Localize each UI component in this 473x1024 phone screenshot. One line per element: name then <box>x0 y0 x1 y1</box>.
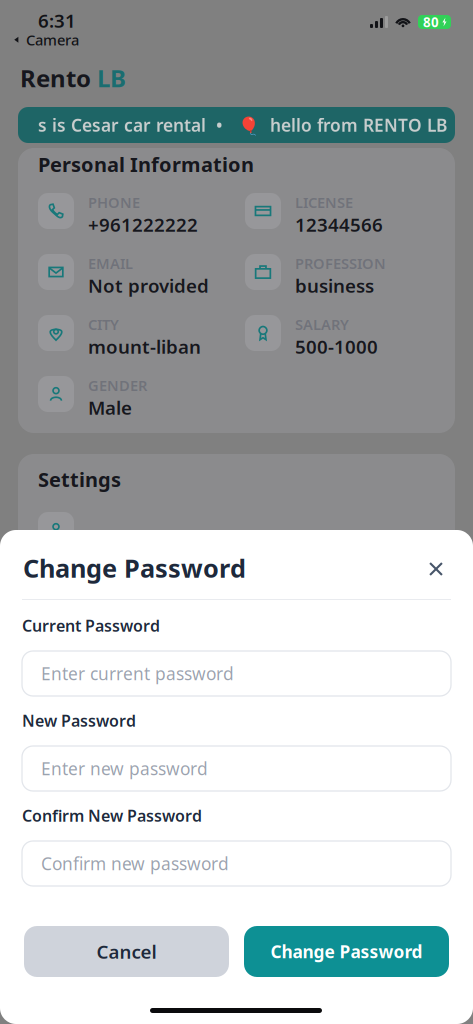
staticText: Camera <box>26 30 79 49</box>
staticText: New Password <box>22 710 136 731</box>
button[interactable]: Enter new password <box>22 746 451 791</box>
button[interactable]: Enter current password <box>22 651 451 696</box>
staticText: Change Password <box>270 940 422 963</box>
staticText: 500-1000 <box>295 334 378 359</box>
staticText: Enter new password <box>41 757 208 780</box>
staticText: 12344566 <box>295 212 383 237</box>
staticText: EMAIL <box>88 253 133 273</box>
staticText: Settings <box>38 466 121 493</box>
staticText: Male <box>88 395 132 420</box>
staticText: Cancel <box>96 939 156 964</box>
staticText: Rento <box>20 62 91 94</box>
staticText: CITY <box>88 314 119 334</box>
staticText: mount-liban <box>88 334 201 359</box>
staticText: SALARY <box>295 314 349 334</box>
button[interactable]: Confirm new password <box>22 841 451 886</box>
staticText: Enter current password <box>41 662 234 685</box>
staticText: Not provided <box>88 273 209 298</box>
staticText: Change Password <box>23 551 246 585</box>
button[interactable]: Close <box>417 550 455 588</box>
staticText: PROFESSION <box>295 253 386 273</box>
staticText: LICENSE <box>295 192 353 212</box>
staticText: Personal Information <box>38 151 254 178</box>
staticText: 80 <box>423 13 439 31</box>
staticText: 6:31 <box>38 8 76 33</box>
staticText: Confirm new password <box>41 852 229 875</box>
staticText: Confirm New Password <box>22 805 202 826</box>
staticText: PHONE <box>88 192 140 212</box>
staticText: s is Cesar car rental • 🎈 hello from REN… <box>38 113 473 136</box>
staticText: GENDER <box>88 375 147 395</box>
staticText: +961222222 <box>88 212 198 237</box>
staticText: business <box>295 273 374 298</box>
staticText: LB <box>97 62 126 94</box>
button[interactable]: Change Password <box>244 926 449 977</box>
button[interactable]: Cancel <box>24 926 229 977</box>
staticText: Current Password <box>22 615 160 636</box>
